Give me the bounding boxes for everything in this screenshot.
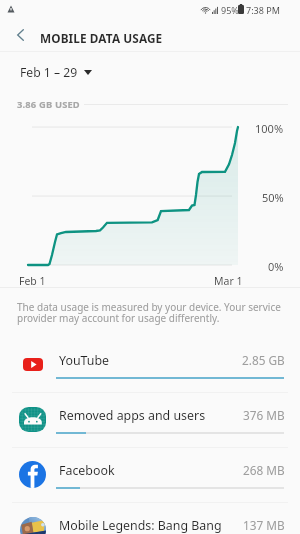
button[interactable]: Feb 1 – 29 — [20, 64, 92, 81]
button[interactable]: Facebook — [0, 447, 300, 502]
button[interactable]: Removed apps and users — [0, 392, 300, 447]
staticText: Mar 1 — [214, 274, 243, 288]
button[interactable]: Mobile Legends: Bang Bang — [0, 502, 300, 534]
staticText: 100% — [255, 121, 284, 136]
staticText: 137 MB — [243, 517, 285, 533]
staticText: Removed apps and users — [59, 407, 206, 424]
staticText: Feb 1 – 29 — [20, 64, 78, 81]
staticText: 0% — [268, 259, 284, 274]
staticText: 50% — [262, 190, 284, 205]
staticText: Feb 1 — [19, 274, 46, 288]
staticText: Mobile Legends: Bang Bang — [59, 517, 222, 534]
staticText: MOBILE DATA USAGE — [40, 30, 163, 46]
staticText: 268 MB — [243, 462, 285, 478]
staticText: The data usage is measured by your devic… — [17, 300, 289, 325]
staticText: 7:38 PM — [246, 4, 280, 16]
staticText: Facebook — [59, 462, 115, 479]
staticText: 3.86 GB USED — [17, 98, 80, 111]
staticText: 2.85 GB — [242, 352, 285, 368]
staticText: 95% — [221, 4, 239, 16]
button[interactable]: Back — [3, 18, 37, 52]
staticText: 376 MB — [243, 407, 285, 423]
staticText: YouTube — [59, 352, 110, 369]
button[interactable]: YouTube — [0, 337, 300, 392]
